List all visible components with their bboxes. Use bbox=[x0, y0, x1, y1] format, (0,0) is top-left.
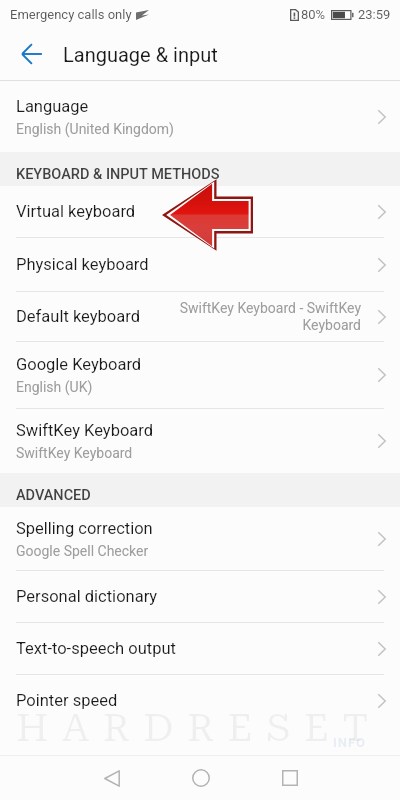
button[interactable]: Text-to-speech output bbox=[0, 623, 400, 674]
button[interactable]: Default keyboard bbox=[0, 292, 400, 341]
staticText: SwiftKey Keyboard bbox=[16, 445, 133, 461]
staticText: ADVANCED bbox=[16, 487, 91, 504]
button[interactable]: Language bbox=[0, 81, 400, 152]
staticText: Language bbox=[16, 97, 89, 116]
staticText: English (United Kingdom) bbox=[16, 121, 174, 137]
button[interactable]: Virtual keyboard bbox=[0, 186, 400, 237]
button[interactable]: Back bbox=[67, 756, 156, 800]
button[interactable]: Home bbox=[156, 756, 245, 800]
button[interactable]: Google Keyboard bbox=[0, 342, 400, 408]
button[interactable]: Physical keyboard bbox=[0, 238, 400, 291]
staticText: SwiftKey Keyboard bbox=[16, 421, 154, 440]
button[interactable]: Personal dictionary bbox=[0, 571, 400, 622]
staticText: Language & input bbox=[63, 43, 218, 66]
staticText: English (UK) bbox=[16, 379, 93, 395]
button[interactable]: Spelling correction bbox=[0, 507, 400, 570]
staticText: Spelling correction bbox=[16, 519, 153, 538]
button[interactable]: Navigate up bbox=[11, 33, 53, 75]
staticText: HARDRESET bbox=[16, 705, 382, 751]
staticText: 80% bbox=[301, 7, 326, 22]
staticText: KEYBOARD & INPUT METHODS bbox=[16, 166, 220, 183]
staticText: Physical keyboard bbox=[16, 255, 149, 274]
staticText: SwiftKey Keyboard - SwiftKey Keyboard bbox=[175, 300, 361, 334]
staticText: Google Spell Checker bbox=[16, 543, 149, 559]
button[interactable]: Pointer speed bbox=[0, 675, 400, 726]
staticText: Personal dictionary bbox=[16, 587, 158, 606]
staticText: Pointer speed bbox=[16, 691, 118, 710]
staticText: INFO bbox=[333, 735, 367, 750]
staticText: 23:59 bbox=[358, 7, 391, 22]
staticText: Text-to-speech output bbox=[16, 639, 176, 658]
button[interactable]: SwiftKey Keyboard bbox=[0, 409, 400, 473]
staticText: Default keyboard bbox=[16, 307, 140, 326]
staticText: Google Keyboard bbox=[16, 355, 142, 374]
staticText: Emergency calls only bbox=[10, 7, 132, 22]
button[interactable]: Recent apps bbox=[245, 756, 334, 800]
staticText: Virtual keyboard bbox=[16, 202, 136, 221]
